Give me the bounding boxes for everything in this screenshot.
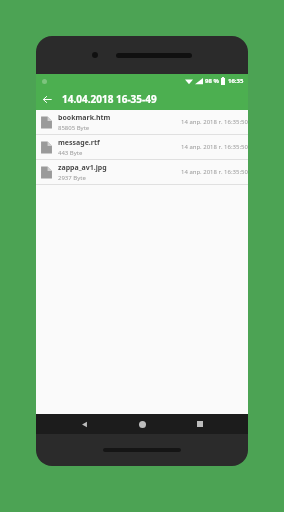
staticText: 16:35 (228, 77, 244, 85)
staticText: message.rtf (58, 138, 100, 148)
staticText: 85805 Byte (58, 124, 90, 132)
staticText: 14.04.2018 16-35-49 (62, 92, 157, 106)
staticText: 14 апр. 2018 г. 16:35:50 (181, 168, 248, 176)
button[interactable]: Back (74, 414, 94, 434)
button[interactable]: Home (132, 414, 152, 434)
button[interactable]: Recents (190, 414, 210, 434)
button[interactable]: zappa_av1.jpg (36, 160, 248, 184)
staticText: 14 апр. 2018 г. 16:35:50 (181, 118, 248, 126)
button[interactable]: message.rtf (36, 135, 248, 159)
staticText: 2937 Byte (58, 174, 86, 182)
staticText: 14 апр. 2018 г. 16:35:50 (181, 143, 248, 151)
staticText: bookmark.htm (58, 113, 111, 123)
staticText: 98 % (205, 77, 219, 85)
button[interactable]: Back (36, 88, 58, 110)
button[interactable]: bookmark.htm (36, 110, 248, 134)
staticText: zappa_av1.jpg (58, 163, 107, 173)
staticText: 443 Byte (58, 149, 83, 157)
